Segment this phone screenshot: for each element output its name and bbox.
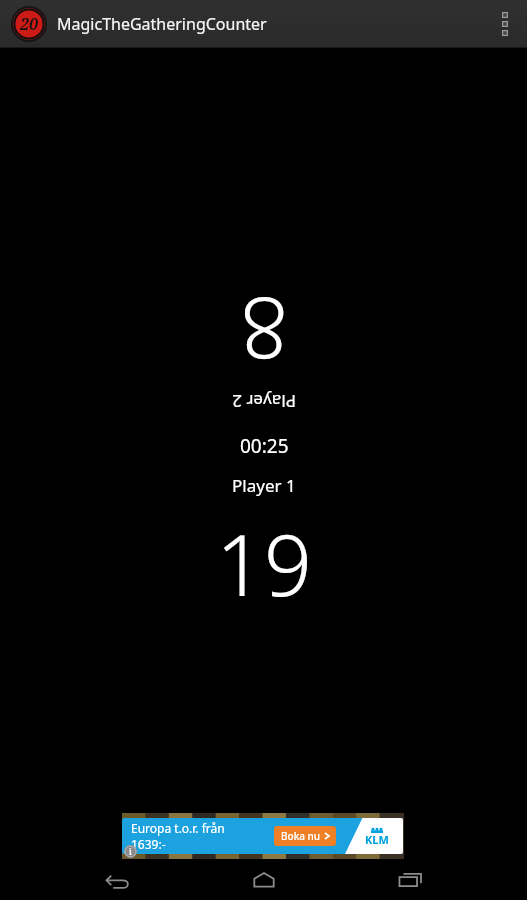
staticText: 19 (216, 506, 312, 606)
button[interactable]: 19 (174, 506, 354, 606)
staticText: Europa t.o.r. från (131, 820, 225, 836)
button[interactable]: Advertisement (122, 813, 403, 859)
button[interactable]: 00:25 (184, 432, 344, 460)
button[interactable]: Home (235, 860, 293, 900)
staticText: i (129, 846, 132, 857)
staticText: KLM (365, 832, 389, 847)
staticText: Boka nu (281, 829, 321, 843)
button[interactable]: Back (89, 860, 147, 900)
staticText: Player 2 (232, 390, 296, 413)
button[interactable]: Recent apps (381, 860, 439, 900)
staticText: MagicTheGatheringCounter (57, 13, 267, 35)
button[interactable]: Player 2 (184, 388, 344, 414)
staticText: 1639:- (131, 836, 166, 852)
staticText: 8 (240, 288, 288, 388)
staticText: 20 (20, 13, 38, 35)
button[interactable]: More options (483, 0, 527, 48)
staticText: Player 1 (232, 474, 296, 497)
button[interactable]: Player 1 (184, 472, 344, 498)
button[interactable]: 8 (184, 288, 344, 388)
button[interactable]: Boka nu (274, 826, 336, 846)
staticText: 00:25 (240, 433, 289, 459)
